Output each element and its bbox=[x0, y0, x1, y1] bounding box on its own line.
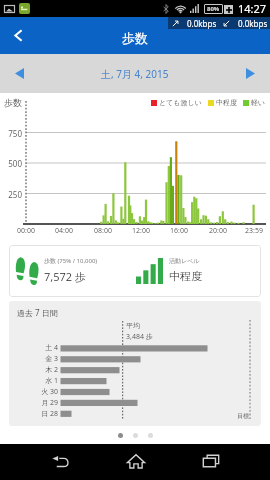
staticText: 土 4 bbox=[9, 343, 58, 353]
staticText: 金 3 bbox=[9, 354, 58, 364]
button[interactable]: Back bbox=[0, 17, 37, 54]
staticText: 7,572 歩 bbox=[44, 269, 86, 284]
staticText: 00:00 bbox=[12, 226, 40, 236]
staticText: 750 bbox=[0, 128, 22, 139]
staticText: 月 29 bbox=[9, 398, 58, 408]
staticText: 中程度 bbox=[216, 98, 237, 107]
staticText: 0.0kbps bbox=[238, 18, 268, 29]
staticText: 中程度 bbox=[169, 269, 202, 283]
staticText: 80% bbox=[207, 5, 220, 13]
button[interactable]: Previous day bbox=[0, 54, 39, 93]
staticText: 火 30 bbox=[9, 387, 58, 397]
staticText: 活動レベル bbox=[169, 257, 200, 265]
staticText: 過去 7 日間 bbox=[17, 307, 58, 318]
button[interactable]: Home bbox=[98, 448, 173, 474]
button[interactable]: Next day bbox=[231, 54, 270, 93]
button[interactable] bbox=[118, 433, 123, 438]
button[interactable]: 過去 7 日間 bbox=[9, 301, 261, 426]
staticText: とても激しい bbox=[159, 98, 202, 107]
staticText: 日 28 bbox=[9, 409, 58, 419]
staticText: 目標 bbox=[237, 412, 249, 420]
button[interactable]: Back bbox=[23, 448, 98, 474]
button[interactable]: 土, 7月 4, 2015 bbox=[101, 67, 169, 81]
staticText: 3,484 歩 bbox=[126, 332, 153, 342]
staticText: 軽い bbox=[251, 98, 266, 107]
button[interactable]: Recents bbox=[173, 448, 248, 474]
staticText: 23:59 bbox=[240, 226, 268, 236]
staticText: 歩数 bbox=[122, 30, 148, 46]
staticText: 04:00 bbox=[50, 226, 78, 236]
button[interactable] bbox=[148, 433, 153, 438]
staticText: 12:00 bbox=[127, 226, 155, 236]
staticText: 水 1 bbox=[9, 376, 58, 386]
staticText: 250 bbox=[0, 189, 22, 200]
staticText: 14:27 bbox=[238, 1, 267, 16]
staticText: 平均 bbox=[126, 321, 140, 330]
staticText: 木 2 bbox=[9, 365, 58, 375]
staticText: 08:00 bbox=[89, 226, 117, 236]
staticText: 歩数 bbox=[4, 97, 22, 108]
staticText: 16:00 bbox=[165, 226, 193, 236]
button[interactable]: 歩数 (75% / 10,000) bbox=[9, 245, 261, 297]
staticText: 500 bbox=[0, 158, 22, 169]
staticText: 歩数 (75% / 10,000) bbox=[44, 257, 98, 265]
button[interactable] bbox=[133, 433, 138, 438]
staticText: 20:00 bbox=[204, 226, 232, 236]
staticText: 0.0kbps bbox=[187, 18, 217, 29]
